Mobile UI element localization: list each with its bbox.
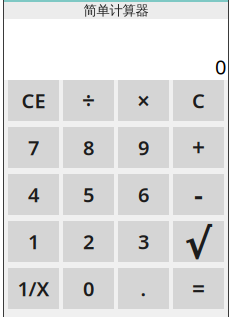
staticText: × [137,85,150,115]
staticText: 1 [28,228,39,255]
staticText: CE [21,87,45,114]
staticText: = [192,273,205,303]
button[interactable]: 0 [63,268,114,309]
staticText: ÷ [82,85,95,115]
button[interactable]: = [173,268,224,309]
button[interactable]: 1/X [8,268,59,309]
staticText: 3 [138,228,149,255]
button[interactable]: 9 [118,127,169,168]
staticText: 1/X [17,275,49,302]
button[interactable]: 8 [63,127,114,168]
staticText: 0 [83,275,94,302]
staticText: 6 [138,181,149,208]
staticText: 7 [28,134,39,161]
staticText: 5 [83,181,94,208]
staticText: √ [184,221,212,262]
button[interactable]: CE [8,80,59,121]
button[interactable]: + [173,127,224,168]
staticText: C [192,87,205,114]
staticText: + [192,132,205,162]
button[interactable]: 3 [118,221,169,262]
button[interactable]: C [173,80,224,121]
button[interactable]: 1 [8,221,59,262]
staticText: 简单计算器 [83,2,148,19]
button[interactable]: 5 [63,174,114,215]
staticText: . [140,275,146,302]
button[interactable]: 7 [8,127,59,168]
staticText: 0 [215,53,226,80]
button[interactable]: . [118,268,169,309]
button[interactable]: × [118,80,169,121]
button[interactable]: 6 [118,174,169,215]
staticText: 8 [83,134,94,161]
button[interactable]: 2 [63,221,114,262]
button[interactable]: √ [173,221,224,262]
staticText: - [194,176,203,213]
staticText: 9 [138,134,149,161]
button[interactable]: ÷ [63,80,114,121]
staticText: 2 [83,228,94,255]
button[interactable]: 4 [8,174,59,215]
staticText: 4 [28,181,39,208]
button[interactable]: - [173,174,224,215]
